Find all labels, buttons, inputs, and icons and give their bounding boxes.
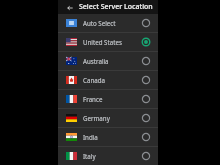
staticText: France — [83, 95, 142, 103]
button[interactable]: Australia — [58, 52, 158, 70]
button[interactable]: France — [58, 90, 158, 108]
staticText: Auto Select — [83, 19, 142, 27]
button[interactable]: India — [58, 128, 158, 146]
staticText: India — [83, 133, 142, 141]
button[interactable]: Auto Select — [58, 14, 158, 32]
staticText: Select Server Location — [79, 2, 153, 12]
button[interactable]: United States — [58, 33, 158, 51]
button[interactable]: Italy — [58, 147, 158, 165]
staticText: Germany — [83, 114, 142, 122]
button[interactable]: Germany — [58, 109, 158, 127]
button[interactable]: Canada — [58, 71, 158, 89]
staticText: Canada — [83, 76, 142, 84]
staticText: Italy — [83, 152, 142, 160]
staticText: Australia — [83, 57, 142, 65]
button[interactable]: Back — [64, 2, 75, 13]
staticText: United States — [83, 38, 142, 46]
